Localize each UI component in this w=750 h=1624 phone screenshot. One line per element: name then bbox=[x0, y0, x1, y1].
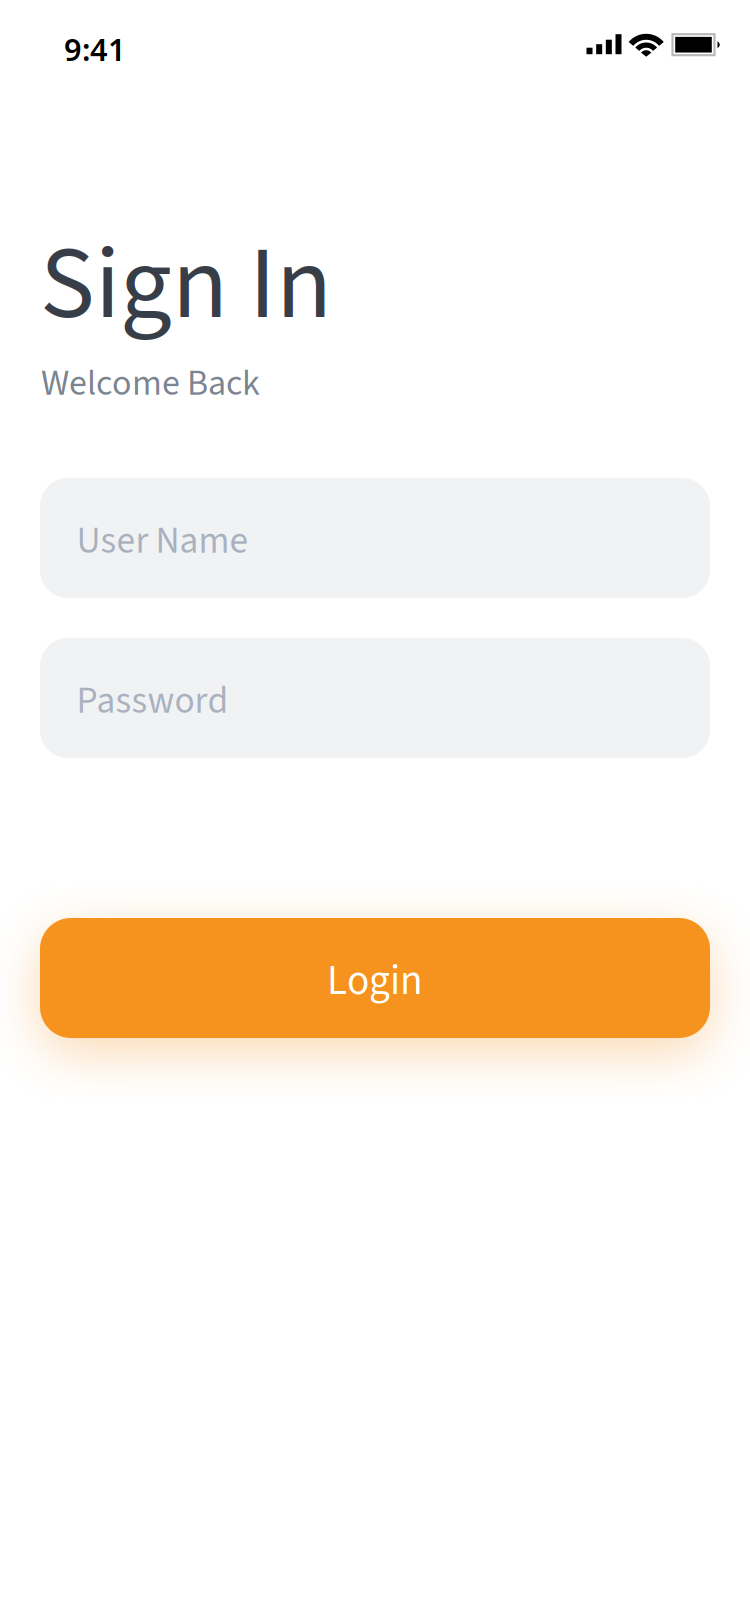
staticText: 9:41 bbox=[64, 29, 126, 69]
staticText: Login bbox=[327, 952, 423, 1010]
button[interactable]: Password bbox=[40, 638, 710, 758]
button[interactable]: Login bbox=[40, 918, 710, 1038]
staticText: Sign In bbox=[40, 212, 332, 358]
button[interactable]: User Name bbox=[40, 478, 710, 598]
staticText: Password bbox=[76, 674, 228, 728]
staticText: Welcome Back bbox=[41, 358, 260, 409]
staticText: User Name bbox=[76, 514, 248, 568]
